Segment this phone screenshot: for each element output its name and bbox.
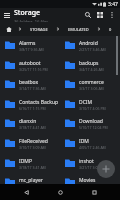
- staticText: beatbox: [19, 79, 39, 86]
- staticText: 3/21/17 3:05 AM: [79, 165, 106, 170]
- button[interactable]: mc_player: [0, 173, 60, 184]
- button[interactable]: Home: [2, 22, 16, 36]
- button[interactable]: Alarms: [0, 36, 60, 56]
- staticText: 0: [109, 27, 112, 32]
- button[interactable]: Android: [60, 36, 120, 56]
- staticText: 5/10/17 12:04 PM: [79, 125, 108, 130]
- staticText: 6/16/17 1:15 PM: [19, 106, 46, 111]
- button[interactable]: beatbox: [0, 75, 60, 95]
- button[interactable]: inshot: [60, 154, 120, 174]
- button[interactable]: STORAGE: [24, 27, 54, 32]
- staticText: DCIM: [79, 99, 93, 106]
- button[interactable]: Home: [52, 184, 68, 200]
- button[interactable]: Search: [82, 9, 94, 21]
- button[interactable]: backups: [60, 56, 120, 76]
- button[interactable]: Contacts Backup: [0, 95, 60, 115]
- staticText: backups: [79, 60, 99, 67]
- staticText: 3/8/17 9:36 AM: [19, 47, 44, 52]
- staticText: 4/05/17 2:46 AM: [79, 145, 106, 150]
- button[interactable]: Menu: [0, 8, 14, 22]
- staticText: 3/10/17 3:09 AM: [19, 145, 46, 150]
- button[interactable]: Download: [60, 114, 120, 134]
- button[interactable]: 0: [103, 27, 118, 32]
- staticText: 3:47: [108, 1, 118, 8]
- button[interactable]: EMULATED: [62, 27, 95, 32]
- staticText: 3/4/17 4:26 AM: [79, 67, 104, 72]
- button[interactable]: autoboot: [0, 56, 60, 76]
- staticText: 3/25/17 11:16 PM: [19, 67, 48, 72]
- button[interactable]: dianxin: [0, 114, 60, 134]
- button[interactable]: Add: [97, 160, 115, 178]
- staticText: Alarms: [19, 40, 36, 47]
- button[interactable]: Grid view: [94, 9, 106, 21]
- button[interactable]: Recents: [86, 184, 102, 200]
- staticText: Android: [79, 40, 98, 47]
- staticText: Download: [79, 118, 103, 125]
- staticText: 36 folders, 16 files: [14, 19, 49, 22]
- staticText: 2/27/17 3:46 AM: [79, 47, 106, 52]
- button[interactable]: FileReceived: [0, 134, 60, 154]
- staticText: 3/10/17 4:06 PM: [79, 106, 106, 111]
- staticText: 3/3/17 3:06 AM: [79, 86, 104, 91]
- button[interactable]: Back: [18, 184, 34, 200]
- staticText: autoboot: [19, 60, 41, 67]
- button[interactable]: IDMP: [0, 154, 60, 174]
- button[interactable]: Movies: [60, 173, 120, 184]
- staticText: dianxin: [19, 118, 37, 125]
- staticText: EMULATED: [68, 27, 89, 32]
- staticText: IDMP: [19, 158, 32, 165]
- staticText: 3/14/17 7:36 AM: [19, 86, 46, 91]
- button[interactable]: More options: [106, 9, 118, 21]
- button[interactable]: commerce: [60, 75, 120, 95]
- staticText: Contacts Backup: [19, 99, 59, 106]
- staticText: Storage: [14, 8, 40, 18]
- staticText: mc_player: [19, 177, 43, 184]
- staticText: Movies: [79, 177, 96, 184]
- staticText: IDM: [79, 138, 89, 145]
- staticText: commerce: [79, 79, 104, 86]
- staticText: 3/18/17 4:41 AM: [19, 125, 46, 130]
- button[interactable]: DCIM: [60, 95, 120, 115]
- staticText: STORAGE: [30, 27, 48, 32]
- staticText: FileReceived: [19, 138, 48, 145]
- staticText: inshot: [79, 158, 94, 165]
- staticText: 3/18/17 3:41 AM: [19, 165, 46, 170]
- button[interactable]: IDM: [60, 134, 120, 154]
